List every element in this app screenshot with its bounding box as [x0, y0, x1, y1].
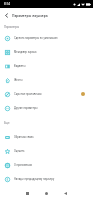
staticText: Сделать параметры по умолчанию [14, 36, 93, 40]
button[interactable]: О приложении [0, 158, 93, 172]
staticText: Еще [4, 121, 10, 125]
staticText: Обратная связь [14, 135, 93, 139]
button[interactable]: Виджеты [0, 59, 93, 73]
button[interactable]: Менеджер экрана [0, 45, 93, 59]
staticText: Менеджер экрана [14, 50, 93, 54]
button[interactable]: Скрытые приложения [0, 87, 93, 101]
staticText: Оценить [14, 149, 93, 153]
button[interactable]: Сделать параметры по умолчанию [0, 31, 93, 45]
button[interactable]: Recent apps [18, 186, 37, 200]
button[interactable]: Назад к предыдущему лаунчеру [0, 172, 93, 186]
staticText: Скрытые приложения [14, 92, 81, 96]
staticText: Параметры лаунчера [12, 13, 48, 18]
staticText: Виджеты [14, 64, 93, 68]
button[interactable]: Другие параметры [0, 101, 93, 115]
button[interactable]: Жесты [0, 73, 93, 87]
staticText: Параметры [4, 25, 20, 29]
button[interactable]: Оценить [0, 144, 93, 158]
staticText: Жесты [14, 78, 93, 82]
staticText: Другие параметры [14, 106, 93, 110]
button[interactable]: Back [56, 186, 75, 200]
button[interactable]: Home [37, 186, 56, 200]
button[interactable]: Обратная связь [0, 130, 93, 144]
staticText: О приложении [14, 163, 93, 167]
button[interactable]: Back [0, 8, 12, 22]
staticText: 8:14 [4, 2, 10, 6]
staticText: Назад к предыдущему лаунчеру [14, 177, 93, 181]
